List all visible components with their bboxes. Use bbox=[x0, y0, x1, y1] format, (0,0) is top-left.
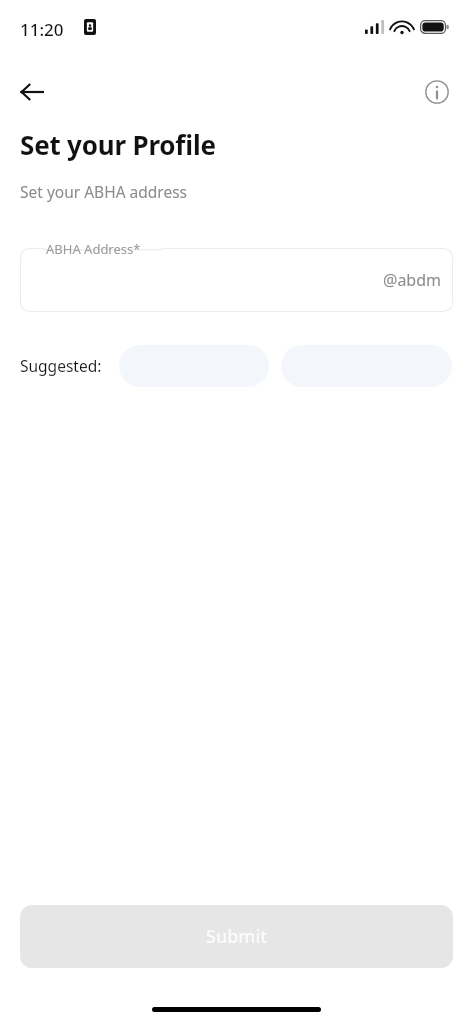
staticText: Submit bbox=[206, 924, 268, 949]
staticText: 11:20 bbox=[20, 18, 64, 41]
staticText: Suggested: bbox=[20, 355, 102, 376]
button[interactable]: Back bbox=[10, 71, 54, 113]
staticText: @abdm bbox=[383, 269, 442, 291]
staticText: ABHA Address* bbox=[46, 240, 141, 258]
button[interactable]: Information bbox=[415, 71, 459, 113]
staticText: Set your ABHA address bbox=[20, 181, 188, 202]
staticText: Set your Profile bbox=[20, 127, 216, 162]
button[interactable]: ABHA Address* bbox=[20, 248, 453, 312]
